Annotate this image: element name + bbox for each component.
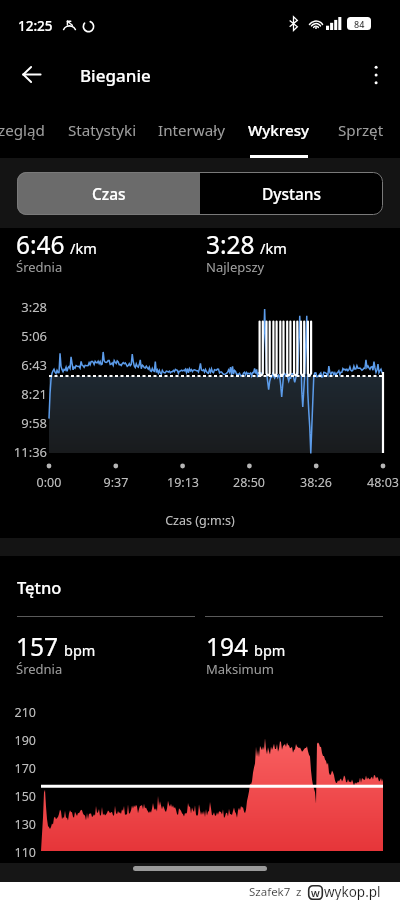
staticText: zegląd xyxy=(0,120,45,141)
staticText: 9:37 xyxy=(86,474,146,491)
button[interactable]: zegląd xyxy=(0,105,55,158)
staticText: 110 xyxy=(0,844,36,861)
staticText: Czas (g:m:s) xyxy=(0,512,400,529)
staticText: 11:36 xyxy=(0,443,47,461)
staticText: bpm xyxy=(64,640,96,660)
staticText: Dystans xyxy=(262,183,322,204)
staticText: Tętno xyxy=(17,576,62,598)
staticText: 6:46 xyxy=(16,228,65,261)
staticText: z xyxy=(296,884,302,900)
staticText: Bieganie xyxy=(80,64,151,87)
staticText: Szafek7 xyxy=(249,884,291,900)
staticText: 0:00 xyxy=(19,474,79,491)
button[interactable]: More options xyxy=(355,54,396,95)
staticText: Statystyki xyxy=(68,120,137,141)
button[interactable]: Wykresy xyxy=(236,105,322,158)
button[interactable]: Statystyki xyxy=(54,105,150,158)
staticText: 6:43 xyxy=(0,356,47,374)
staticText: 3:28 xyxy=(206,228,255,261)
button[interactable]: Dystans xyxy=(200,172,383,215)
staticText: Średnia xyxy=(16,258,63,276)
staticText: 48:03 xyxy=(353,474,400,491)
staticText: /km xyxy=(70,238,97,258)
staticText: 210 xyxy=(0,704,36,721)
button[interactable]: Back xyxy=(11,54,52,95)
staticText: W xyxy=(311,887,320,899)
staticText: Średnia xyxy=(16,660,63,678)
staticText: bpm xyxy=(254,640,286,660)
staticText: Czas xyxy=(92,183,126,204)
staticText: Najlepszy xyxy=(206,258,265,276)
staticText: Maksimum xyxy=(206,660,274,678)
button[interactable]: Interwały xyxy=(145,105,237,158)
staticText: wykop.pl xyxy=(324,883,381,900)
staticText: 84 xyxy=(354,18,365,30)
staticText: 190 xyxy=(0,732,36,749)
staticText: 19:13 xyxy=(153,474,213,491)
staticText: Wykresy xyxy=(248,120,310,141)
staticText: /km xyxy=(260,238,287,258)
staticText: Interwały xyxy=(158,120,225,141)
staticText: 170 xyxy=(0,760,36,777)
staticText: 157 xyxy=(16,630,59,663)
staticText: 5:06 xyxy=(0,327,47,345)
staticText: Sprzęt xyxy=(338,120,384,141)
staticText: 3:28 xyxy=(0,298,47,316)
staticText: 194 xyxy=(206,630,249,663)
staticText: 8:21 xyxy=(0,385,47,403)
staticText: 12:25 xyxy=(18,17,53,35)
staticText: 9:58 xyxy=(0,414,47,432)
staticText: 28:50 xyxy=(219,474,279,491)
button[interactable]: Czas xyxy=(17,172,200,215)
staticText: 150 xyxy=(0,788,36,805)
button[interactable]: Sprzęt xyxy=(323,105,399,158)
staticText: 130 xyxy=(0,816,36,833)
staticText: 38:26 xyxy=(286,474,346,491)
